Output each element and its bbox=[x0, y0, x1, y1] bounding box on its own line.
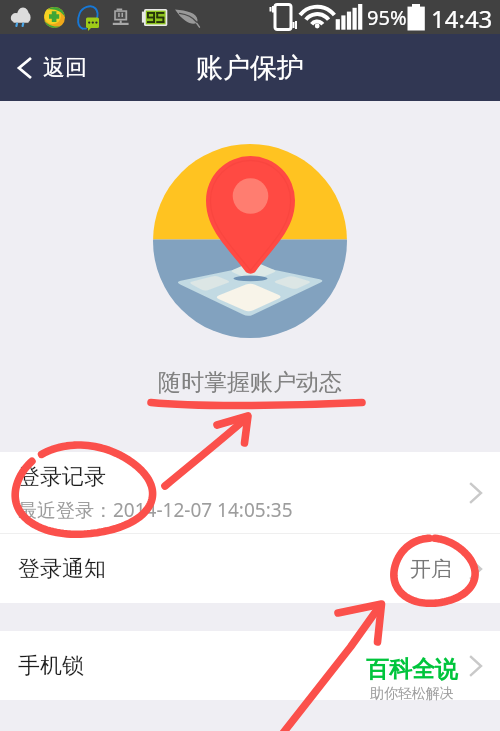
staticText: 返回 bbox=[43, 54, 87, 82]
staticText: 助你轻松解决 bbox=[370, 685, 454, 703]
staticText: 登录记录 bbox=[18, 463, 106, 491]
staticText: 开启 bbox=[410, 556, 452, 582]
staticText: 最近登录：2014-12-07 14:05:35 bbox=[18, 497, 293, 523]
staticText: 登录通知 bbox=[18, 555, 106, 583]
staticText: 账户保护 bbox=[196, 51, 304, 85]
button[interactable]: 登录记录 bbox=[0, 452, 500, 533]
button[interactable]: 登录通知 bbox=[0, 534, 500, 603]
staticText: 14:43 bbox=[431, 2, 493, 35]
button[interactable]: 手机锁 bbox=[0, 631, 500, 700]
staticText: 手机锁 bbox=[18, 652, 84, 680]
staticText: 随时掌握账户动态 bbox=[158, 368, 342, 397]
staticText: 百科全说 bbox=[366, 655, 458, 684]
staticText: 95% bbox=[367, 4, 407, 31]
button[interactable]: 返回 bbox=[0, 44, 103, 92]
